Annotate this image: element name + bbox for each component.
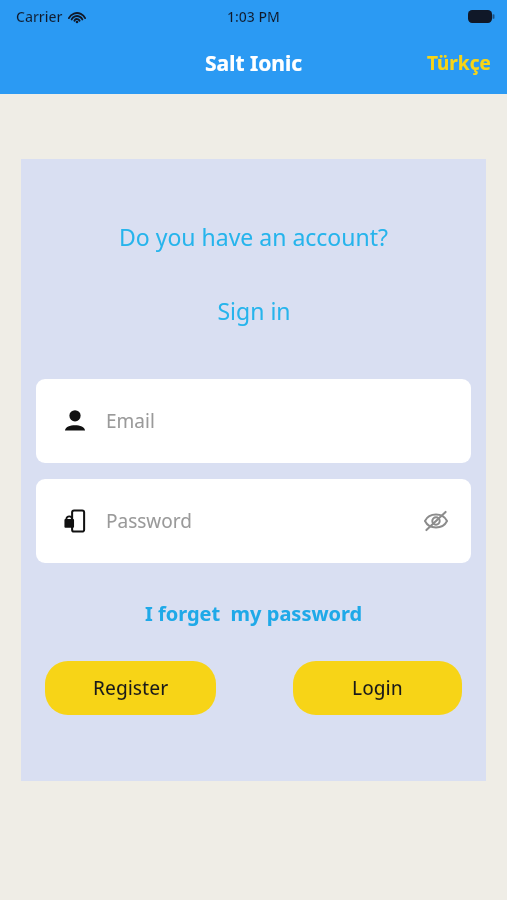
staticText: Login xyxy=(352,675,403,701)
staticText: Carrier xyxy=(16,7,63,26)
button[interactable]: Register xyxy=(45,661,216,715)
button[interactable]: Türkçe xyxy=(411,40,507,86)
staticText: Register xyxy=(93,675,169,701)
button[interactable]: Login xyxy=(293,661,462,715)
staticText: Email xyxy=(106,408,155,434)
button[interactable]: Show password xyxy=(411,496,461,546)
staticText: Salt Ionic xyxy=(205,49,303,78)
staticText: Sign in xyxy=(217,295,291,326)
staticText: I forget my password xyxy=(145,600,363,627)
staticText: Türkçe xyxy=(427,50,491,76)
button[interactable]: I forget my password xyxy=(133,594,375,633)
button[interactable]: Password xyxy=(36,479,471,563)
button[interactable]: Email xyxy=(36,379,471,463)
staticText: Do you have an account? xyxy=(119,221,388,252)
staticText: Password xyxy=(106,508,192,534)
staticText: 1:03 PM xyxy=(227,7,280,26)
